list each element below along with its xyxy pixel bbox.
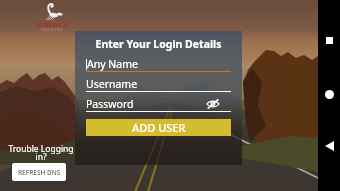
staticText: ADD USER <box>132 120 186 135</box>
button[interactable]: Any Name <box>86 58 231 72</box>
button[interactable]: ADD USER <box>86 119 231 136</box>
button[interactable]: Username <box>86 78 231 92</box>
staticText: REFRESH DNS <box>18 168 61 177</box>
staticText: SCORPION TV <box>27 22 77 29</box>
staticText: Trouble Logging in? <box>5 143 77 163</box>
staticText: Username <box>86 77 138 91</box>
staticText: Password <box>86 97 134 111</box>
button[interactable]: Recent apps <box>323 34 335 46</box>
button[interactable]: Show password <box>206 98 220 110</box>
staticText: Enter Your Login Details <box>75 37 242 51</box>
button[interactable]: Password <box>86 98 231 112</box>
staticText: Any Name <box>87 57 138 71</box>
button[interactable]: Home <box>323 88 335 100</box>
staticText: REAL ACCESS <box>27 27 77 32</box>
button[interactable]: REFRESH DNS <box>12 163 66 181</box>
button[interactable]: Back <box>323 140 335 152</box>
